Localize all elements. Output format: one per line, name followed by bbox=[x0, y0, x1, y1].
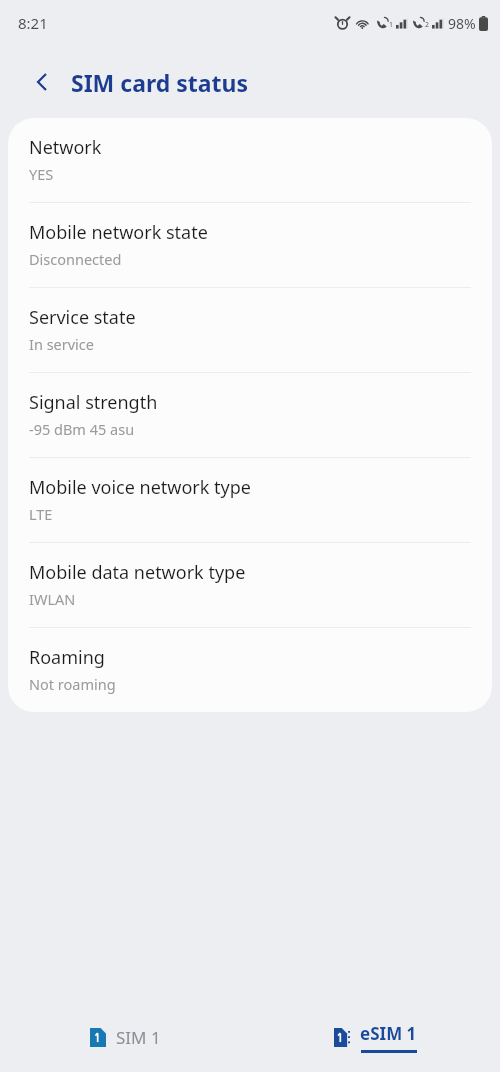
staticText: Mobile network state bbox=[29, 220, 208, 245]
button[interactable]: eSIM 1 bbox=[318, 1014, 433, 1061]
staticText: Roaming bbox=[29, 645, 105, 670]
button[interactable]: Roaming bbox=[8, 628, 492, 712]
button[interactable]: Mobile network state bbox=[8, 203, 492, 287]
staticText: Signal strength bbox=[29, 390, 158, 415]
staticText: Not roaming bbox=[29, 674, 116, 694]
staticText: Mobile data network type bbox=[29, 560, 246, 585]
staticText: IWLAN bbox=[29, 589, 76, 609]
staticText: 8:21 bbox=[18, 13, 48, 33]
button[interactable]: Signal strength bbox=[8, 373, 492, 457]
button[interactable]: Mobile voice network type bbox=[8, 458, 492, 542]
staticText: SIM 1 bbox=[116, 1026, 161, 1049]
button[interactable]: Mobile data network type bbox=[8, 543, 492, 627]
button[interactable]: Service state bbox=[8, 288, 492, 372]
staticText: Mobile voice network type bbox=[29, 475, 251, 500]
staticText: YES bbox=[29, 164, 54, 184]
button[interactable]: Network bbox=[8, 118, 492, 202]
staticText: 2 bbox=[425, 20, 430, 30]
button[interactable]: Navigate up bbox=[22, 62, 62, 102]
staticText: Service state bbox=[29, 305, 136, 330]
staticText: -95 dBm 45 asu bbox=[29, 419, 135, 439]
staticText: 1 bbox=[389, 20, 394, 30]
staticText: Network bbox=[29, 135, 102, 160]
staticText: LTE bbox=[29, 504, 53, 524]
staticText: SIM card status bbox=[71, 67, 249, 98]
staticText: Disconnected bbox=[29, 249, 122, 269]
button[interactable]: SIM 1 bbox=[74, 1018, 177, 1057]
staticText: In service bbox=[29, 334, 95, 354]
staticText: eSIM 1 bbox=[360, 1022, 417, 1045]
staticText: 98% bbox=[448, 14, 476, 33]
